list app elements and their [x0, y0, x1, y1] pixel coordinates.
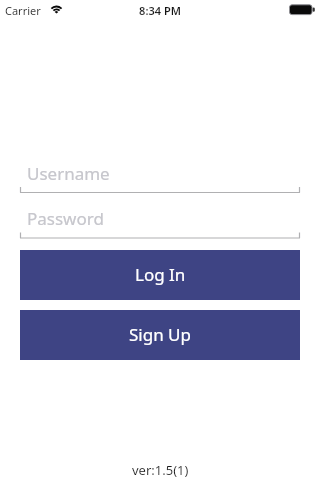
button[interactable]: Sign Up — [20, 310, 300, 360]
staticText: ver:1.5(1) — [132, 461, 189, 479]
button[interactable]: Log In — [20, 250, 300, 300]
staticText: Sign Up — [129, 323, 191, 346]
staticText: Carrier — [5, 3, 41, 18]
button[interactable]: Username — [20, 160, 300, 194]
button[interactable]: Password — [20, 205, 300, 239]
staticText: Username — [27, 162, 110, 185]
staticText: Log In — [135, 263, 186, 286]
staticText: Password — [27, 207, 104, 230]
staticText: 8:34 PM — [139, 3, 181, 18]
